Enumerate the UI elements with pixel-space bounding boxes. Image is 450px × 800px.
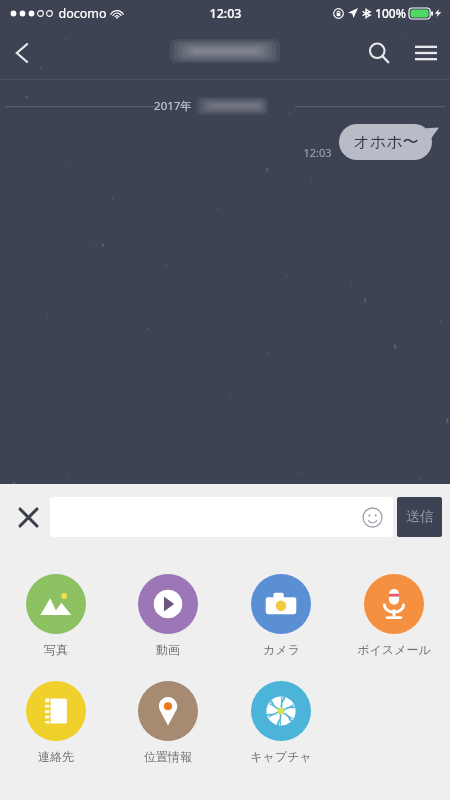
button[interactable]: Menu (402, 29, 450, 77)
staticText: docomo (58, 5, 107, 22)
staticText: カメラ (263, 642, 300, 657)
staticText: 100% (375, 5, 406, 21)
button[interactable]: 連絡先 (26, 679, 86, 766)
button[interactable]: Close (6, 495, 50, 539)
staticText: キャプチャ (250, 749, 312, 764)
button[interactable]: 位置情報 (138, 679, 198, 766)
staticText: 動画 (156, 642, 180, 657)
button[interactable]: オホホ〜 (339, 124, 439, 160)
button[interactable]: カメラ (251, 572, 311, 659)
staticText: ボイスメール (357, 642, 431, 657)
staticText: 連絡先 (38, 749, 74, 764)
staticText: 12:03 (209, 5, 242, 22)
button[interactable]: Emoji (359, 504, 385, 530)
button[interactable]: 写真 (26, 572, 86, 659)
button[interactable]: Emoji (50, 497, 393, 537)
staticText: 2017年 (154, 98, 192, 114)
button[interactable]: Search (356, 30, 402, 76)
button[interactable]: Back (0, 30, 46, 76)
staticText: オホホ〜 (353, 132, 419, 152)
button[interactable]: 送信 (397, 497, 442, 537)
staticText: 写真 (44, 642, 68, 657)
button[interactable]: ボイスメール (357, 572, 431, 659)
staticText: 位置情報 (144, 749, 192, 764)
button[interactable]: キャプチャ (250, 679, 312, 766)
button[interactable]: 動画 (138, 572, 198, 659)
staticText: 12:03 (303, 145, 332, 160)
staticText: 送信 (406, 508, 434, 526)
